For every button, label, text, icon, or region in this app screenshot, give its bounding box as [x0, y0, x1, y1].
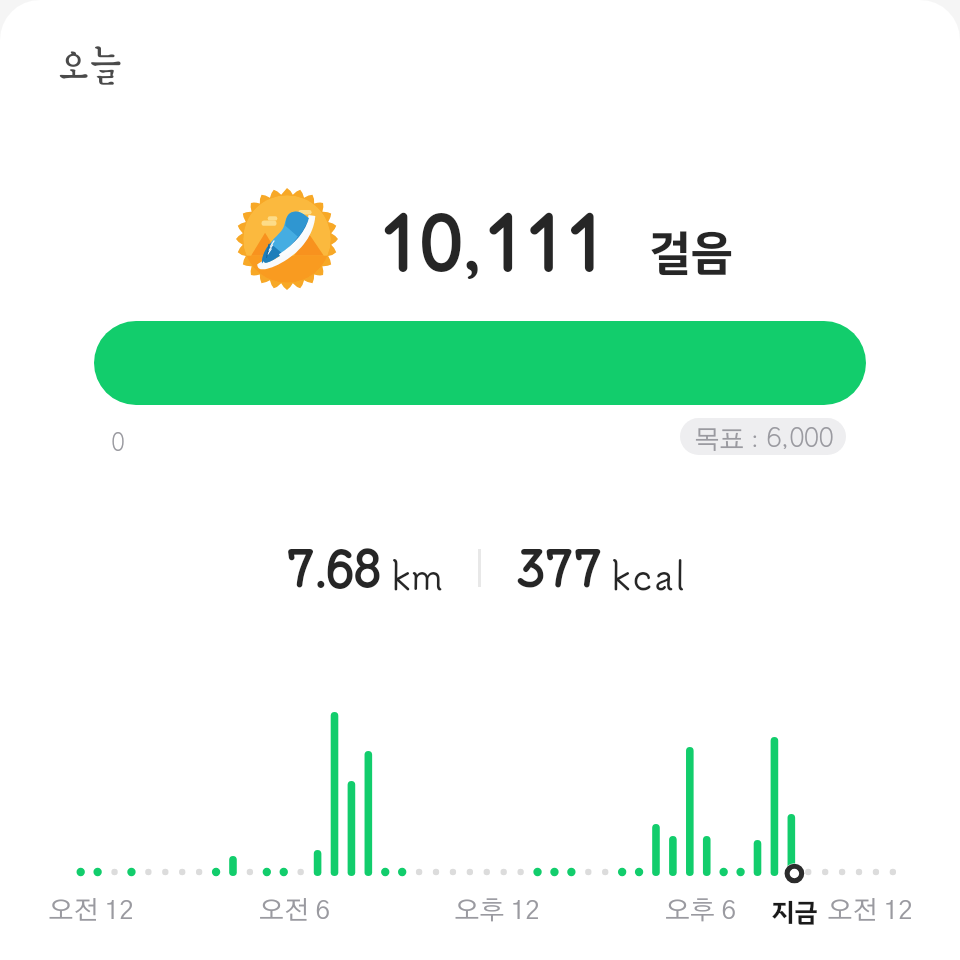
staticText: 오전 6: [259, 898, 330, 924]
staticText: 목표 : 6,000: [694, 418, 833, 454]
button[interactable]: Walking badge: [236, 188, 338, 290]
staticText: km: [391, 551, 443, 600]
staticText: 377: [516, 535, 602, 600]
button[interactable]: 오늘: [0, 0, 960, 960]
staticText: 0: [111, 424, 126, 457]
staticText: 오늘: [58, 44, 123, 87]
staticText: 걸음: [649, 217, 733, 288]
staticText: 오전 12: [48, 898, 134, 924]
staticText: 지금: [771, 893, 818, 932]
staticText: 오후 6: [665, 898, 736, 924]
staticText: 오전 12: [827, 898, 913, 924]
staticText: kcal: [611, 551, 688, 600]
staticText: 10,111: [378, 190, 606, 291]
button[interactable]: 목표 : 6,000: [680, 418, 846, 455]
staticText: 오후 12: [454, 898, 540, 924]
button[interactable]: [94, 321, 866, 405]
staticText: 7.68: [286, 535, 381, 600]
